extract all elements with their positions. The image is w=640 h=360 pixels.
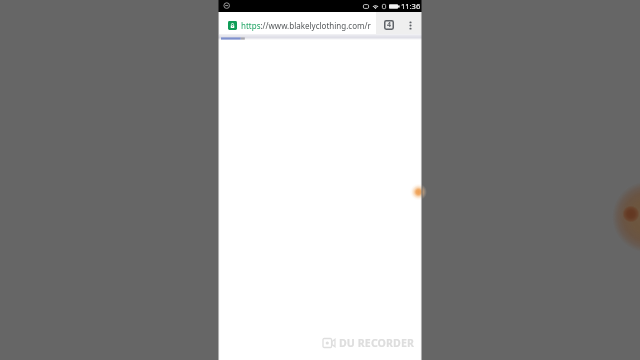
staticText: https://www.blakelyclothing.com/r bbox=[241, 20, 374, 31]
button[interactable]: More options bbox=[402, 12, 422, 34]
staticText: 11:36 bbox=[401, 1, 421, 11]
button[interactable]: Switch tabs bbox=[376, 12, 402, 34]
staticText: 4 bbox=[387, 20, 392, 30]
button[interactable]: https://www.blakelyclothing.com/r bbox=[219, 12, 376, 34]
staticText: DU RECORDER bbox=[339, 336, 415, 350]
